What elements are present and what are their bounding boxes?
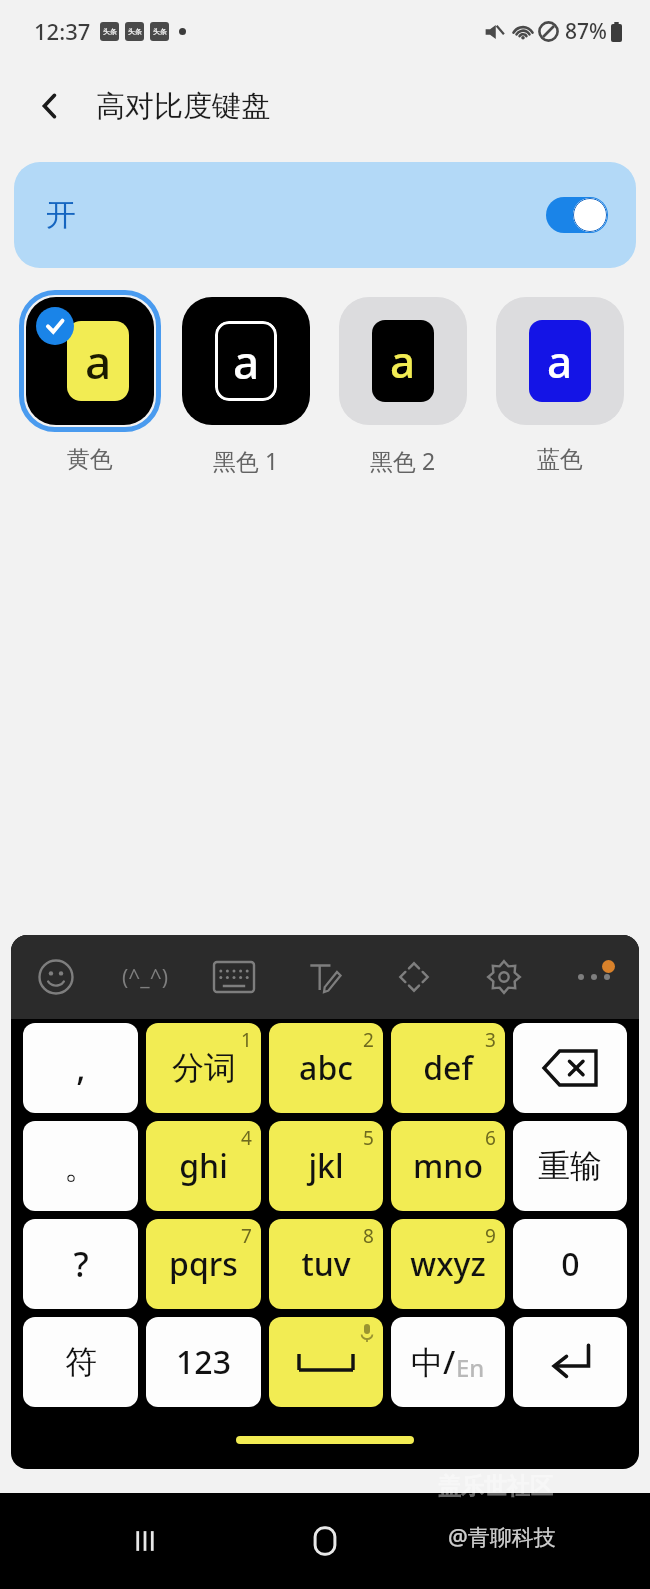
staticText: 黑色 1	[213, 445, 279, 476]
button[interactable]: def	[391, 1023, 505, 1113]
staticText: 头条	[128, 27, 142, 36]
button[interactable]: 开	[14, 162, 636, 268]
staticText: 分词	[172, 1048, 236, 1088]
button[interactable]: Move cursor	[369, 935, 459, 1019]
button[interactable]: 123	[146, 1317, 261, 1407]
staticText: 4	[241, 1125, 252, 1151]
staticText: def	[423, 1046, 473, 1090]
staticText: 高对比度键盘	[96, 88, 270, 125]
button[interactable]: a	[324, 290, 481, 476]
button[interactable]: 重输	[513, 1121, 627, 1211]
button[interactable]: Recents	[115, 1511, 175, 1571]
button[interactable]: a	[168, 290, 324, 476]
staticText: 87%	[565, 17, 607, 46]
button[interactable]: Backspace	[513, 1023, 627, 1113]
button[interactable]: 符	[23, 1317, 138, 1407]
staticText: En	[456, 1351, 485, 1384]
staticText: pqrs	[169, 1242, 238, 1286]
staticText: tuv	[301, 1242, 351, 1286]
staticText: (^_^)	[122, 963, 168, 992]
button[interactable]: Emoticon	[100, 935, 189, 1019]
staticText: a	[547, 331, 573, 391]
staticText: 黄色	[67, 445, 113, 474]
staticText: 头条	[153, 27, 167, 36]
staticText: 0	[561, 1242, 580, 1286]
staticText: 7	[241, 1223, 252, 1249]
staticText: @青聊科技	[448, 1521, 556, 1551]
staticText: jkl	[308, 1144, 344, 1188]
staticText: 2	[363, 1027, 374, 1053]
staticText: 中/	[411, 1340, 456, 1384]
button[interactable]: Chinese English toggle	[391, 1317, 505, 1407]
staticText: 符	[65, 1342, 97, 1382]
button[interactable]: Home	[295, 1511, 355, 1571]
staticText: 盖乐世社区	[438, 1472, 553, 1501]
button[interactable]: abc	[269, 1023, 383, 1113]
button[interactable]: wxyz	[391, 1219, 505, 1309]
staticText: ?	[73, 1241, 89, 1287]
staticText: a	[390, 331, 416, 391]
staticText: 12:37	[34, 16, 91, 46]
button[interactable]: Back	[22, 78, 78, 134]
button[interactable]: Settings	[459, 935, 549, 1019]
button[interactable]: More	[549, 935, 639, 1019]
staticText: 重输	[538, 1146, 602, 1186]
staticText: 123	[176, 1340, 231, 1384]
staticText: 5	[363, 1125, 374, 1151]
button[interactable]: 0	[513, 1219, 627, 1309]
staticText: ghi	[179, 1144, 228, 1188]
button[interactable]: 分词	[146, 1023, 261, 1113]
button[interactable]: a	[481, 290, 638, 474]
button[interactable]: a	[12, 290, 168, 474]
staticText: 3	[485, 1027, 496, 1053]
staticText: a	[85, 330, 112, 393]
button[interactable]: Keyboard	[189, 935, 279, 1019]
staticText: 蓝色	[537, 445, 583, 474]
staticText: 开	[46, 196, 76, 234]
button[interactable]: pqrs	[146, 1219, 261, 1309]
staticText: 8	[363, 1223, 374, 1249]
staticText: 。	[64, 1145, 98, 1188]
staticText: ,	[76, 1045, 86, 1091]
staticText: 6	[485, 1125, 496, 1151]
button[interactable]: jkl	[269, 1121, 383, 1211]
staticText: 黑色 2	[370, 445, 436, 476]
staticText: abc	[299, 1046, 353, 1090]
button[interactable]: tuv	[269, 1219, 383, 1309]
staticText: 1	[241, 1027, 252, 1053]
button[interactable]: ghi	[146, 1121, 261, 1211]
staticText: wxyz	[410, 1242, 486, 1286]
button[interactable]: ,	[23, 1023, 138, 1113]
staticText: 头条	[103, 27, 117, 36]
button[interactable]: Space	[269, 1317, 383, 1407]
staticText: 9	[485, 1223, 496, 1249]
button[interactable]: Handwriting	[279, 935, 369, 1019]
button[interactable]: ?	[23, 1219, 138, 1309]
button[interactable]: mno	[391, 1121, 505, 1211]
button[interactable]: 。	[23, 1121, 138, 1211]
button[interactable]: Enter	[513, 1317, 627, 1407]
staticText: a	[233, 330, 260, 393]
staticText: mno	[413, 1144, 483, 1188]
button[interactable]: Emoji	[11, 935, 100, 1019]
